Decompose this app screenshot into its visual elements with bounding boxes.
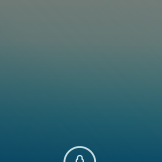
button[interactable]: Water Lock [0,0,162,162]
